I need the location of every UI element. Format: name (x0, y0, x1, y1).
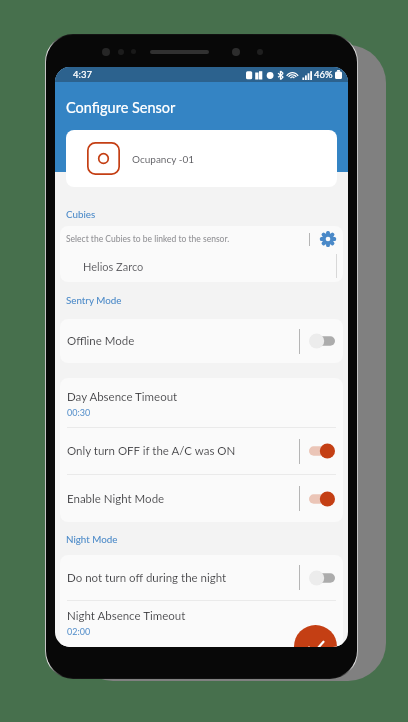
staticText: 02:00 (67, 626, 91, 637)
staticText: Select the Cubies to be linked to the se… (66, 234, 309, 244)
staticText: Configure Sensor (66, 99, 176, 116)
button[interactable]: Do not turn off during the night (60, 555, 343, 600)
staticText: 46% (314, 69, 333, 80)
staticText: Do not turn off during the night (67, 571, 299, 585)
staticText: Cubies (66, 208, 96, 220)
staticText: Night Absence Timeout (67, 609, 186, 623)
staticText: Sentry Mode (66, 294, 122, 306)
staticText: Helios Zarco (83, 260, 144, 273)
button[interactable]: Save (294, 625, 337, 647)
staticText: Day Absence Timeout (67, 390, 178, 404)
button[interactable]: Night Absence Timeout (60, 601, 343, 647)
staticText: Ocupancy -01 (132, 153, 195, 165)
staticText: Only turn OFF if the A/C was ON (67, 444, 299, 458)
button[interactable]: Only turn OFF if the A/C was ON (60, 428, 343, 474)
staticText: 00:30 (67, 407, 91, 418)
button[interactable]: Ocupancy -01 (66, 130, 337, 187)
staticText: Offline Mode (67, 334, 299, 348)
button[interactable]: Day Absence Timeout (60, 378, 343, 427)
button[interactable]: Enable Night Mode (60, 475, 343, 522)
button[interactable]: Offline Mode (60, 319, 343, 363)
staticText: Enable Night Mode (67, 492, 299, 506)
button[interactable]: Settings (319, 230, 337, 248)
staticText: Night Mode (66, 533, 118, 545)
staticText: 4:37 (73, 69, 92, 80)
